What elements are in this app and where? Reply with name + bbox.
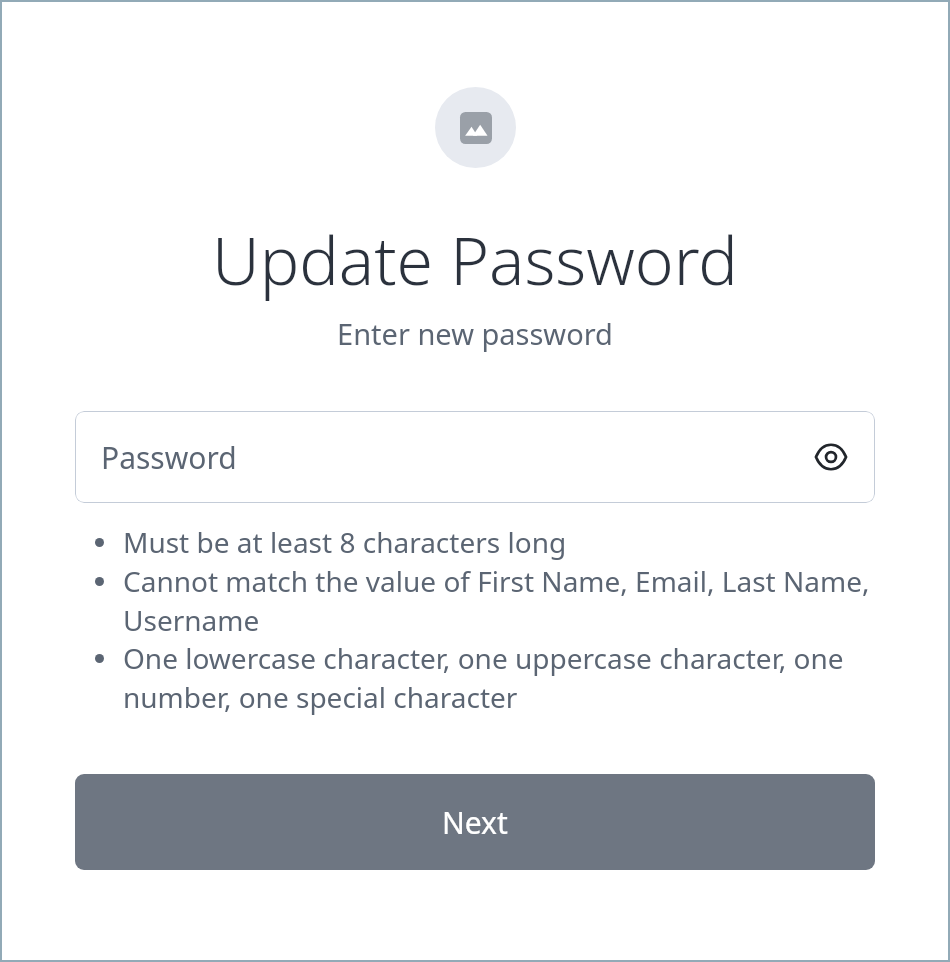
staticText: Next [442, 802, 508, 843]
button[interactable]: Next [75, 774, 875, 870]
staticText: One lowercase character, one uppercase c… [123, 639, 875, 716]
button[interactable]: Show password [809, 435, 853, 479]
staticText: Must be at least 8 characters long [123, 523, 875, 561]
staticText: Password [101, 437, 809, 478]
button[interactable]: Password [75, 411, 875, 503]
staticText: Cannot match the value of First Name, Em… [123, 562, 875, 639]
staticText: Enter new password [337, 314, 613, 353]
staticText: Update Password [212, 214, 738, 304]
